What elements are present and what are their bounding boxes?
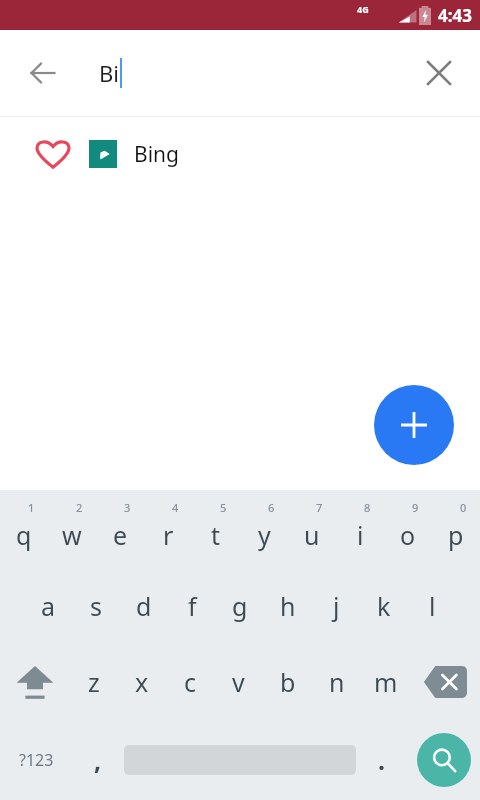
button[interactable]: .	[356, 720, 408, 800]
button[interactable]: m	[361, 644, 410, 720]
staticText: 9	[412, 500, 419, 515]
staticText: m	[374, 665, 398, 699]
button[interactable]: 5	[192, 490, 240, 568]
button[interactable]: 7	[288, 490, 336, 568]
staticText: 2	[76, 500, 83, 515]
staticText: k	[377, 589, 391, 623]
button[interactable]: Bing	[0, 117, 480, 191]
staticText: ?123	[19, 749, 54, 771]
staticText: v	[232, 665, 245, 699]
staticText: a	[41, 589, 56, 623]
staticText: d	[136, 589, 152, 623]
staticText: 0	[460, 500, 467, 515]
staticText: o	[400, 518, 416, 552]
staticText: 7	[316, 500, 323, 515]
button[interactable]: ?123	[0, 720, 72, 800]
button[interactable]: 4	[144, 490, 192, 568]
staticText: y	[258, 518, 271, 552]
button[interactable]: f	[168, 568, 216, 644]
button[interactable]: 9	[384, 490, 432, 568]
staticText: ,	[94, 743, 102, 777]
button[interactable]: 2	[48, 490, 96, 568]
staticText: Bing	[134, 140, 179, 169]
staticText: g	[232, 589, 248, 623]
staticText: p	[448, 518, 464, 552]
button[interactable]: Clear	[412, 46, 466, 100]
staticText: 4	[172, 500, 179, 515]
button[interactable]: 6	[240, 490, 288, 568]
staticText: .	[378, 743, 386, 777]
button[interactable]: Backspace	[410, 644, 480, 720]
staticText: r	[163, 518, 174, 552]
button[interactable]: v	[214, 644, 263, 720]
staticText: x	[135, 665, 149, 699]
button[interactable]: 0	[432, 490, 480, 568]
staticText: b	[280, 665, 296, 699]
button[interactable]: ,	[72, 720, 124, 800]
button[interactable]: z	[70, 644, 118, 720]
staticText: 4:43	[438, 4, 472, 27]
staticText: 1	[28, 500, 35, 515]
staticText: j	[333, 589, 340, 623]
button[interactable]: l	[408, 568, 456, 644]
staticText: w	[62, 518, 82, 552]
button[interactable]: Shift	[0, 644, 70, 720]
button[interactable]: s	[72, 568, 120, 644]
staticText: s	[90, 589, 102, 623]
button[interactable]: Space	[124, 720, 356, 800]
staticText: z	[88, 665, 100, 699]
staticText: 8	[364, 500, 371, 515]
staticText: n	[329, 665, 345, 699]
button[interactable]: a	[24, 568, 72, 644]
staticText: l	[429, 589, 436, 623]
staticText: 5	[220, 500, 227, 515]
button[interactable]: d	[120, 568, 168, 644]
staticText: t	[211, 518, 221, 552]
button[interactable]: j	[312, 568, 360, 644]
button[interactable]: b	[263, 644, 312, 720]
staticText: u	[304, 518, 320, 552]
staticText: 3	[124, 500, 131, 515]
button[interactable]: 8	[336, 490, 384, 568]
staticText: c	[184, 665, 197, 699]
staticText: Bi	[99, 58, 119, 88]
staticText: 6	[268, 500, 275, 515]
staticText: h	[280, 589, 296, 623]
staticText: q	[16, 518, 32, 552]
staticText: f	[188, 589, 197, 623]
button[interactable]: h	[264, 568, 312, 644]
button[interactable]: 1	[0, 490, 48, 568]
button[interactable]: c	[166, 644, 214, 720]
button[interactable]: g	[216, 568, 264, 644]
button[interactable]: n	[312, 644, 361, 720]
button[interactable]: Search	[417, 733, 471, 787]
button[interactable]: k	[360, 568, 408, 644]
staticText: i	[357, 518, 364, 552]
button[interactable]: 3	[96, 490, 144, 568]
staticText: 4G	[357, 3, 369, 15]
staticText: e	[113, 518, 128, 552]
button[interactable]: Add	[374, 385, 454, 465]
button[interactable]: Back	[14, 44, 72, 102]
button[interactable]: x	[118, 644, 166, 720]
